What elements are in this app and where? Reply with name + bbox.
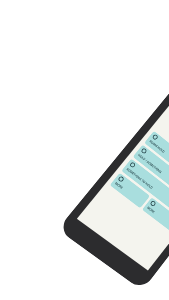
staticText: ROOM HOLD [148,139,166,154]
button[interactable]: ROOM HOLD [144,131,169,191]
button[interactable]: HOLD / SOMETHING [133,144,169,205]
button[interactable]: MORE [142,197,169,233]
staticText: SOMETHING TO HOLD [126,167,154,190]
button[interactable]: MORE [109,173,150,208]
staticText: HOLD / SOMETHING [137,153,163,175]
button[interactable]: SOMETHING TO HOLD [121,158,169,219]
staticText: MORE [146,206,156,214]
staticText: MORE [114,181,124,190]
